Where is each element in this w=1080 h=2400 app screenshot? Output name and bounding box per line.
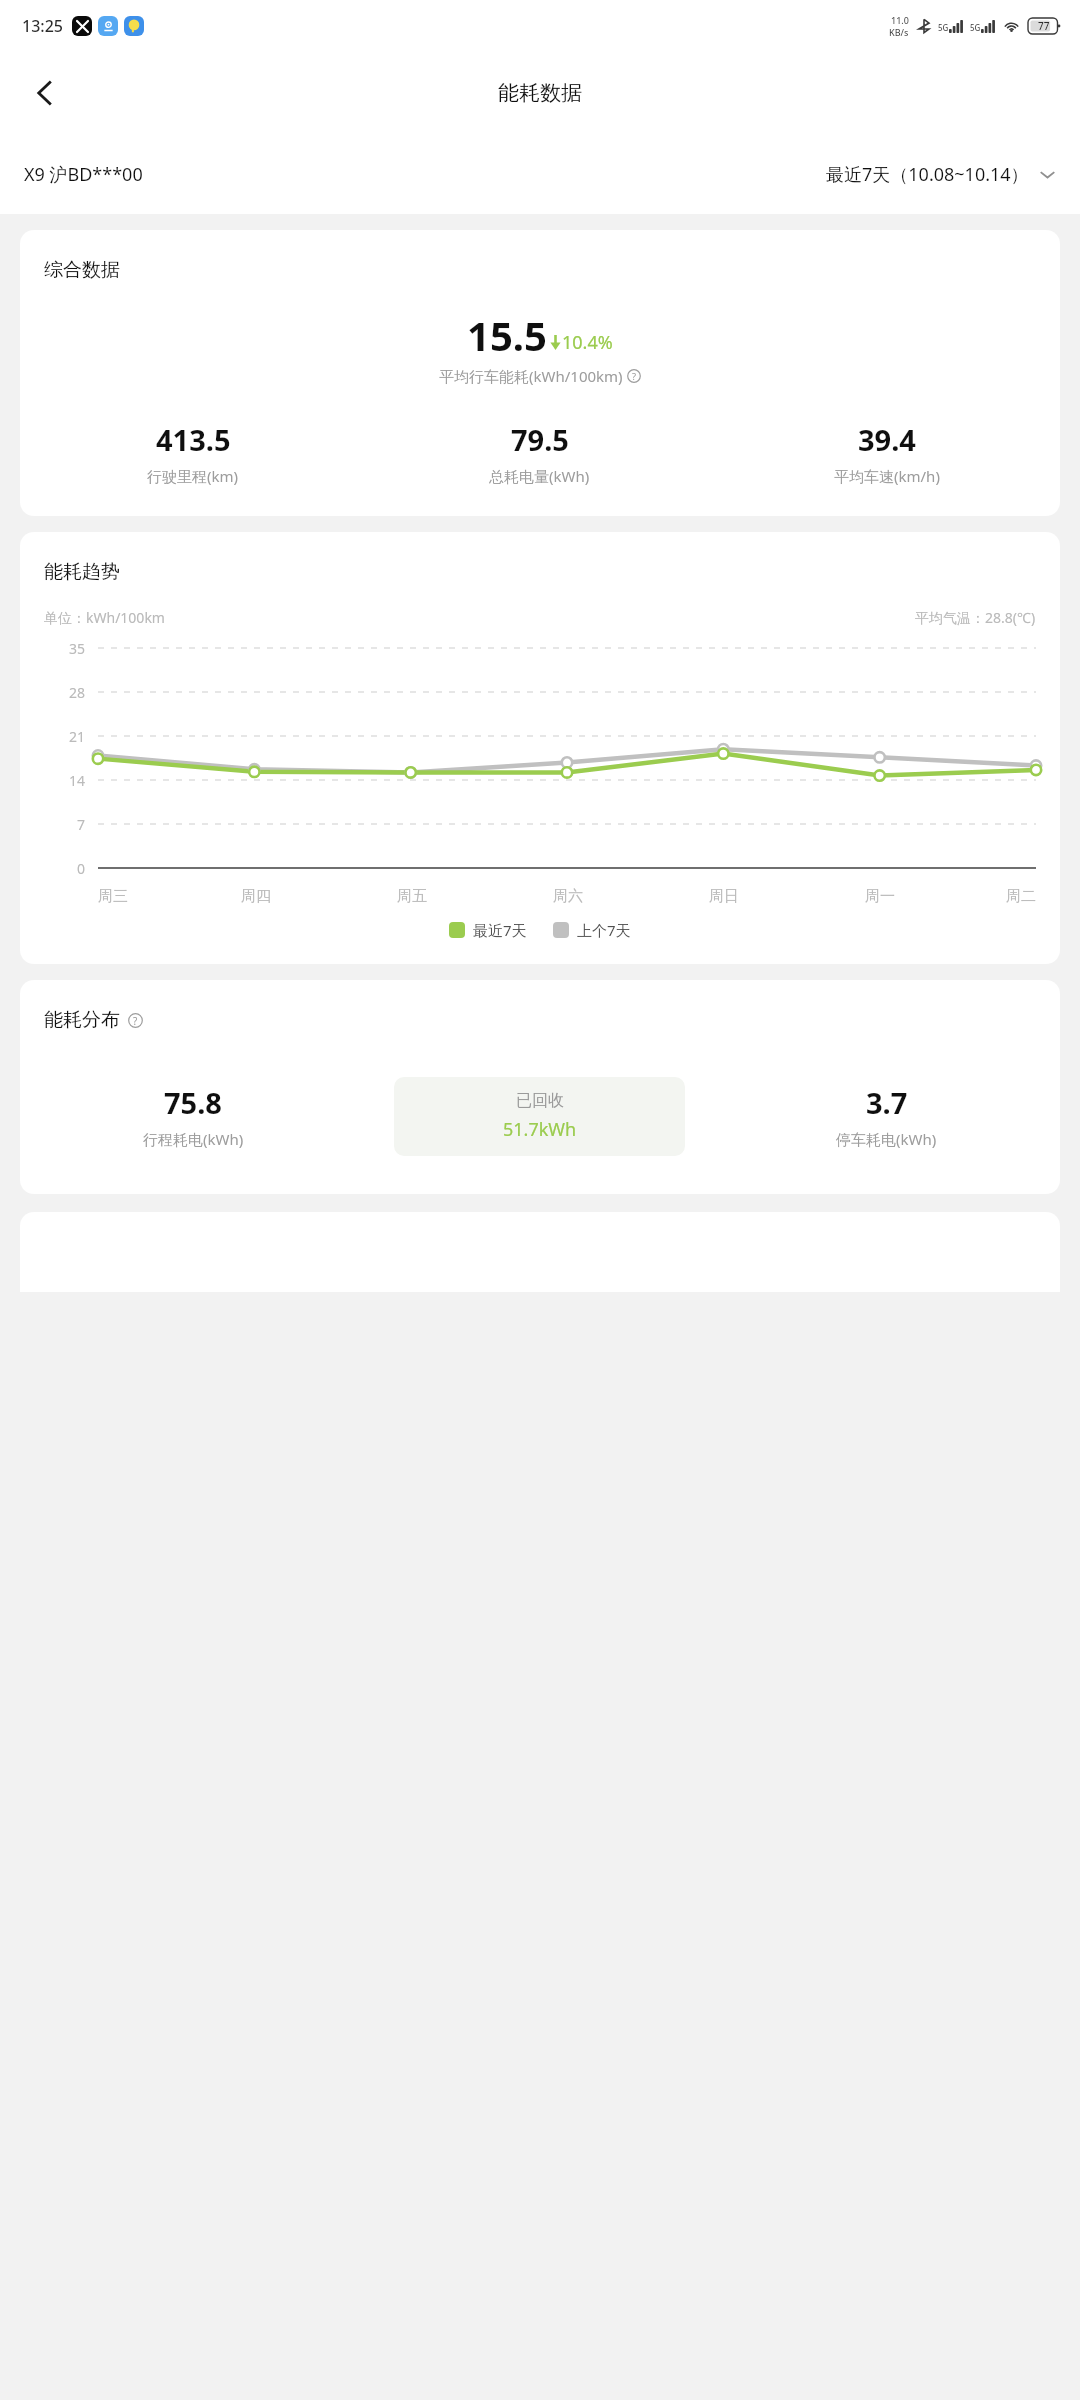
staticText: 能耗分布 — [44, 1008, 120, 1032]
staticText: 平均气温：28.8(℃) — [915, 608, 1036, 627]
staticText: 51.7kWh — [503, 1117, 577, 1142]
button[interactable]: X9 沪BD***00 — [24, 162, 143, 187]
staticText: 周五 — [397, 887, 427, 906]
button[interactable]: 3.7 — [713, 1083, 1060, 1149]
staticText: ? — [133, 1014, 138, 1027]
button[interactable]: 上个7天 — [553, 920, 631, 940]
staticText: 77 — [1038, 19, 1050, 33]
staticText: 单位：kWh/100km — [44, 608, 165, 627]
staticText: 3.7 — [866, 1083, 908, 1122]
staticText: 5G — [970, 22, 981, 33]
staticText: 21 — [69, 727, 86, 745]
staticText: 11.0 — [891, 14, 909, 26]
staticText: 10.4% — [562, 330, 613, 355]
staticText: 停车耗电(kWh) — [836, 1129, 937, 1149]
button[interactable]: 413.5 — [20, 420, 366, 486]
staticText: 413.5 — [156, 420, 231, 459]
button[interactable]: 75.8 — [20, 1083, 366, 1149]
staticText: 39.4 — [858, 420, 916, 459]
staticText: 79.5 — [511, 420, 569, 459]
staticText: 上个7天 — [577, 920, 631, 940]
button[interactable]: 39.4 — [713, 420, 1060, 486]
staticText: 平均车速(km/h) — [834, 466, 940, 486]
staticText: 周二 — [1006, 887, 1036, 906]
staticText: KB/s — [889, 26, 909, 38]
button[interactable]: 最近7天 — [449, 920, 527, 940]
staticText: 已回收 — [516, 1091, 564, 1111]
staticText: 28 — [69, 683, 86, 701]
staticText: 7 — [77, 815, 86, 833]
button[interactable]: Back — [18, 66, 72, 120]
staticText: 14 — [69, 771, 86, 789]
staticText: 13:25 — [22, 15, 63, 37]
staticText: 最近7天（10.08~10.14） — [826, 162, 1029, 187]
staticText: 行程耗电(kWh) — [143, 1129, 244, 1149]
staticText: 周四 — [241, 887, 271, 906]
staticText: 能耗数据 — [498, 80, 582, 106]
staticText: 行驶里程(km) — [147, 466, 239, 486]
staticText: 总耗电量(kWh) — [489, 466, 590, 486]
staticText: 最近7天 — [473, 920, 527, 940]
staticText: 周三 — [98, 887, 128, 906]
staticText: 15.5 — [467, 308, 547, 362]
staticText: 5G — [938, 22, 949, 33]
staticText: 周六 — [553, 887, 583, 906]
staticText: 35 — [69, 639, 86, 657]
staticText: 平均行车能耗(kWh/100km) — [439, 366, 623, 386]
staticText: 周日 — [709, 887, 739, 906]
staticText: 能耗趋势 — [44, 560, 120, 584]
staticText: 0 — [77, 859, 86, 877]
button[interactable]: 最近7天（10.08~10.14） — [826, 162, 1056, 187]
staticText: ? — [632, 370, 637, 383]
staticText: 周一 — [865, 887, 895, 906]
staticText: 综合数据 — [44, 258, 120, 282]
button[interactable]: 已回收 — [394, 1091, 685, 1142]
button[interactable]: 79.5 — [366, 420, 713, 486]
staticText: 75.8 — [164, 1083, 222, 1122]
